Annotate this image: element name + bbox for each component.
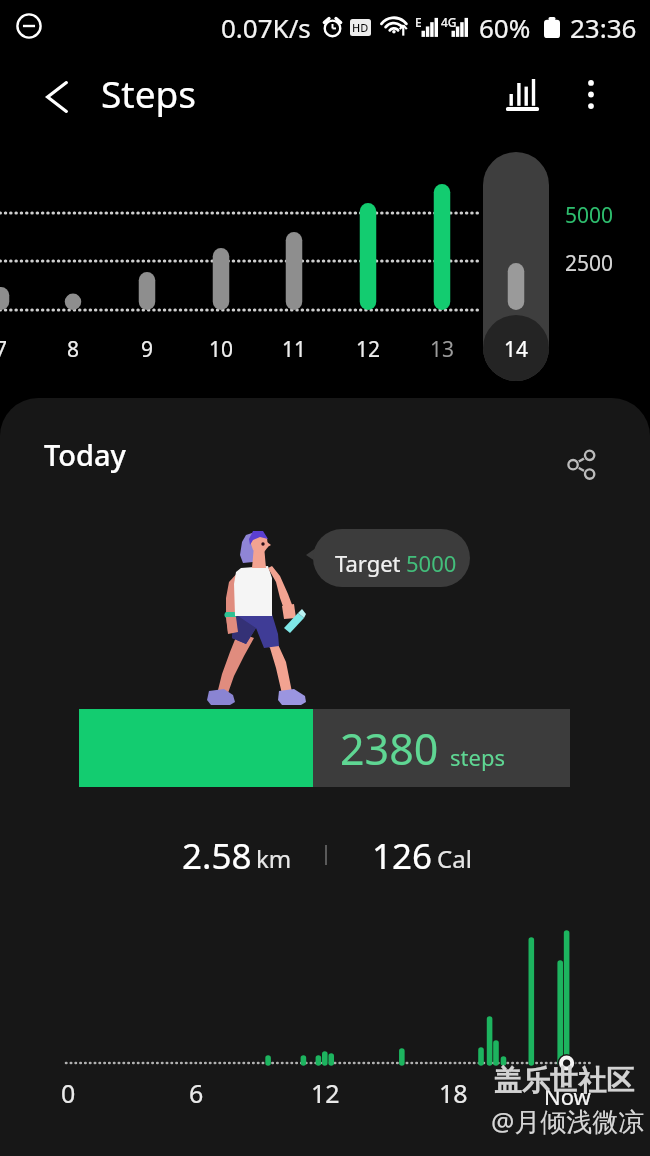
staticText: 10 (209, 335, 234, 364)
staticText: 6 (189, 1076, 204, 1108)
staticText: 12 (311, 1076, 340, 1108)
staticText: Now (544, 1081, 591, 1111)
button[interactable]: 12 (335, 152, 401, 367)
staticText: 7 (0, 335, 8, 364)
staticText: Target (335, 548, 401, 578)
button[interactable]: Trends chart (494, 67, 550, 123)
staticText: HD (352, 20, 369, 35)
staticText: 13 (430, 335, 455, 364)
staticText: 5000 (565, 201, 614, 230)
staticText: steps (450, 742, 505, 772)
staticText: Steps (101, 68, 197, 118)
staticText: 14 (504, 335, 529, 364)
button[interactable]: 7 (0, 152, 34, 367)
staticText: 12 (356, 335, 381, 364)
staticText: 2500 (565, 249, 614, 278)
button[interactable]: 11 (261, 152, 327, 367)
button[interactable]: More options (563, 66, 619, 122)
staticText: E (415, 14, 422, 30)
staticText: 11 (282, 335, 307, 364)
button[interactable]: 13 (409, 152, 475, 367)
staticText: 盖乐世社区 (494, 1063, 634, 1098)
staticText: Cal (437, 842, 472, 875)
staticText: @月倾浅微凉 (491, 1103, 645, 1139)
staticText: 4G (441, 14, 457, 30)
staticText: 60% (479, 10, 531, 45)
button[interactable]: Back (29, 69, 85, 125)
staticText: km (256, 842, 292, 875)
staticText: 0 (61, 1076, 76, 1108)
button[interactable]: 9 (114, 152, 180, 367)
staticText: 126 (372, 832, 433, 880)
button[interactable]: Share (553, 436, 609, 492)
staticText: 8 (67, 335, 80, 364)
staticText: 2380 (340, 719, 439, 778)
button[interactable]: 10 (188, 152, 254, 367)
staticText: 9 (141, 335, 154, 364)
staticText: 2.58 (182, 832, 252, 880)
button[interactable]: 2380 (79, 709, 570, 787)
staticText: Today (44, 435, 126, 474)
staticText: 18 (439, 1076, 468, 1108)
staticText: 0.07K/s (221, 10, 311, 45)
button[interactable]: 14 (483, 152, 549, 381)
staticText: 5000 (406, 548, 457, 578)
staticText: 23:36 (570, 10, 637, 45)
button[interactable]: 8 (40, 152, 106, 367)
